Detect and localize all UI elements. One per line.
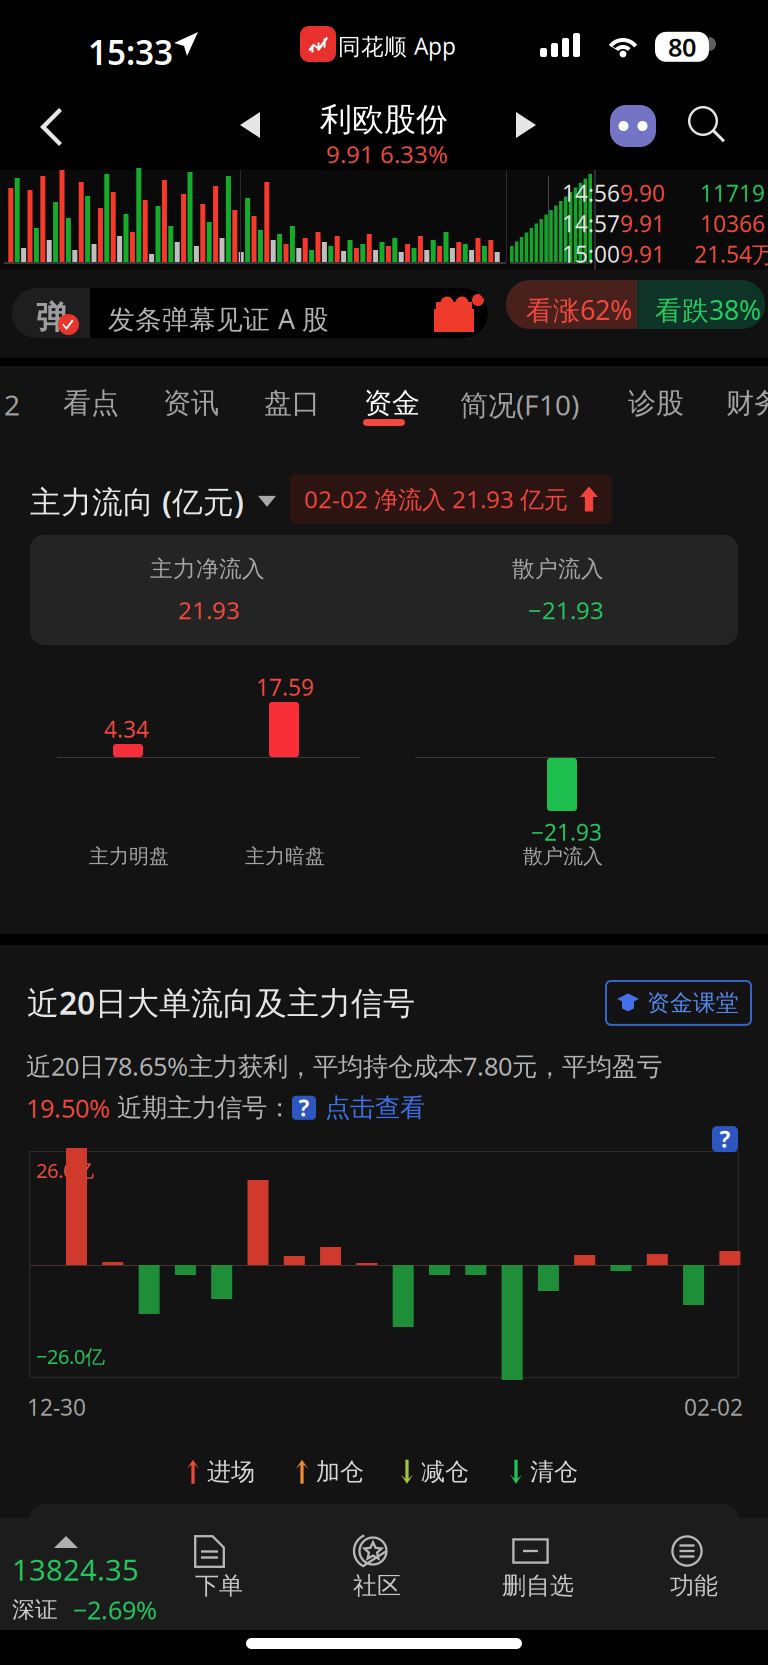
staticText: 14:56: [562, 178, 620, 208]
staticText: 21.93: [178, 594, 240, 626]
staticText: 9.90: [620, 178, 665, 208]
staticText: 主力净流入: [150, 555, 265, 583]
staticText: 资金课堂: [647, 989, 739, 1017]
staticText: 19.50%: [26, 1091, 110, 1125]
staticText: 15:33: [88, 30, 173, 74]
staticText: ?: [719, 1124, 730, 1154]
staticText: 删自选: [502, 1571, 574, 1600]
staticText: 财务: [726, 386, 768, 420]
staticText: 弹: [36, 298, 68, 337]
staticText: 02-02: [684, 1392, 743, 1422]
staticText: 功能: [670, 1571, 718, 1600]
staticText: 主力流向 (亿元): [30, 481, 244, 522]
staticText: 13824.35: [12, 1550, 139, 1589]
staticText: 下单: [195, 1571, 243, 1600]
staticText: 2: [4, 386, 20, 423]
staticText: 进场: [207, 1457, 255, 1486]
staticText: 简况(F10): [460, 386, 579, 423]
staticText: 9.91: [620, 239, 665, 269]
staticText: 21.54万: [694, 239, 768, 269]
staticText: 点击查看: [325, 1092, 425, 1123]
staticText: 主力明盘: [89, 844, 169, 869]
staticText: 近期主力信号：: [117, 1092, 292, 1123]
staticText: 利欧股份: [320, 100, 448, 139]
staticText: 盘口: [264, 386, 320, 420]
staticText: 26.0亿: [36, 1157, 94, 1184]
staticText: 11719: [700, 178, 765, 208]
staticText: 散户流入: [523, 844, 603, 869]
staticText: 17.59: [256, 672, 314, 702]
staticText: 看跌38%: [655, 292, 761, 327]
staticText: 看点: [63, 386, 119, 420]
staticText: 诊股: [628, 386, 684, 420]
staticText: 近20日78.65%主力获利，平均持仓成本7.80元，平均盈亏: [26, 1049, 662, 1083]
staticText: 加仓: [316, 1457, 364, 1486]
staticText: 14:57: [562, 208, 620, 239]
staticText: 80: [668, 30, 696, 64]
staticText: 近20日大单流向及主力信号: [27, 981, 415, 1023]
staticText: 同花顺 App: [338, 31, 456, 61]
staticText: 散户流入: [512, 555, 604, 583]
staticText: 15:00: [562, 239, 620, 269]
staticText: 02-02 净流入 21.93 亿元: [304, 483, 568, 515]
staticText: −26.0亿: [36, 1343, 105, 1370]
staticText: −2.69%: [73, 1593, 157, 1627]
staticText: −21.93: [531, 817, 602, 847]
staticText: 社区: [353, 1571, 401, 1600]
staticText: 10366: [700, 208, 765, 239]
staticText: 资金: [364, 386, 420, 420]
staticText: 清仓: [530, 1457, 578, 1486]
staticText: 4.34: [104, 714, 149, 744]
staticText: 发条弹幕见证 A 股: [108, 301, 329, 336]
staticText: 9.91: [620, 208, 665, 239]
staticText: 主力暗盘: [245, 844, 325, 869]
staticText: 12-30: [27, 1392, 86, 1422]
staticText: 看涨62%: [526, 292, 632, 327]
staticText: −21.93: [528, 594, 604, 626]
staticText: 深证: [12, 1596, 58, 1624]
staticText: 9.91 6.33%: [326, 138, 448, 170]
staticText: 减仓: [421, 1457, 469, 1486]
staticText: 资讯: [163, 386, 219, 420]
staticText: ?: [298, 1093, 309, 1123]
